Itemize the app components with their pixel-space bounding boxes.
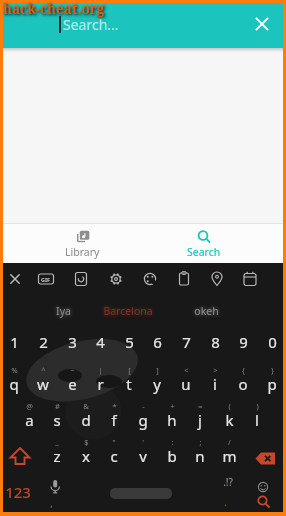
staticText: 7 [182,332,191,352]
button[interactable] [250,12,274,36]
staticText: # [55,401,60,411]
button[interactable]: GIF [36,269,56,289]
staticText: , [50,497,53,509]
staticText: ; [199,437,202,447]
button[interactable] [106,269,126,289]
staticText: 3 [68,332,77,352]
staticText: < [184,365,189,375]
staticText: b [167,446,177,466]
staticText: k [225,410,234,430]
staticText: ~ [70,365,75,375]
button[interactable]: Search... [0,0,286,48]
staticText: t [126,374,132,394]
staticText: s [53,410,61,430]
staticText: Search... [63,15,119,34]
button[interactable] [174,269,194,289]
staticText: r [97,374,104,394]
staticText: ( [228,401,231,411]
staticText: 6 [153,332,162,352]
button[interactable] [47,479,63,501]
staticText: { [242,365,245,375]
button[interactable] [71,269,91,289]
staticText: y [153,374,161,394]
staticText: l [255,410,259,430]
staticText: f [111,410,117,430]
button[interactable] [5,269,25,289]
staticText: okeh [194,304,219,318]
staticText: m [222,446,237,466]
staticText: = [198,401,203,411]
staticText: : [171,437,174,447]
button[interactable] [6,446,34,468]
staticText: | [98,365,103,375]
staticText: Barcelona [103,304,153,318]
button[interactable] [252,451,280,467]
staticText: GIF [41,276,51,283]
staticText: $ [84,437,89,447]
staticText: * [112,401,117,411]
staticText: g [138,410,148,430]
staticText: ) [256,401,259,411]
staticText: Search [187,245,221,259]
staticText: 123 [5,482,31,502]
staticText: hack-cheat.org [3,0,105,18]
staticText: 0 [268,332,277,352]
button[interactable] [240,269,260,289]
staticText: - [142,401,145,411]
staticText: a [25,410,34,430]
staticText: & [83,401,89,411]
staticText: c [110,446,118,466]
staticText: v [139,446,147,466]
staticText: } [271,365,274,375]
staticText: 8 [211,332,220,352]
staticText: . [224,494,227,509]
staticText: z [53,446,61,466]
staticText: ' [142,437,144,447]
staticText: _ [55,437,59,447]
staticText: e [68,374,77,394]
staticText: w [37,374,49,394]
button[interactable] [207,269,227,289]
staticText: @ [26,401,33,411]
staticText: x [82,446,90,466]
staticText: 9 [239,332,248,352]
staticText: u [181,374,191,394]
staticText: q [9,374,19,394]
staticText: ] [156,365,159,375]
staticText: Library [65,245,100,259]
button[interactable] [254,494,274,512]
staticText: % [11,365,18,375]
button[interactable]: Search [143,224,286,263]
staticText: h [167,410,177,430]
staticText: / [228,437,231,447]
staticText: .!? [223,475,233,489]
staticText: > [213,365,218,375]
staticText: d [81,410,91,430]
staticText: [ [128,365,131,375]
staticText: o [238,374,248,394]
staticText: 2 [39,332,48,352]
staticText: 4 [96,332,105,352]
staticText: Iya [56,304,71,318]
staticText: 1 [10,332,19,352]
staticText: + [170,401,175,411]
staticText: 5 [125,332,134,352]
staticText: i [213,374,217,394]
button[interactable] [140,269,160,289]
staticText: " [112,437,116,447]
staticText: p [267,374,277,394]
staticText: j [198,410,202,430]
staticText: n [195,446,205,466]
staticText: ^ [41,365,46,375]
button[interactable]: Library [0,224,143,263]
